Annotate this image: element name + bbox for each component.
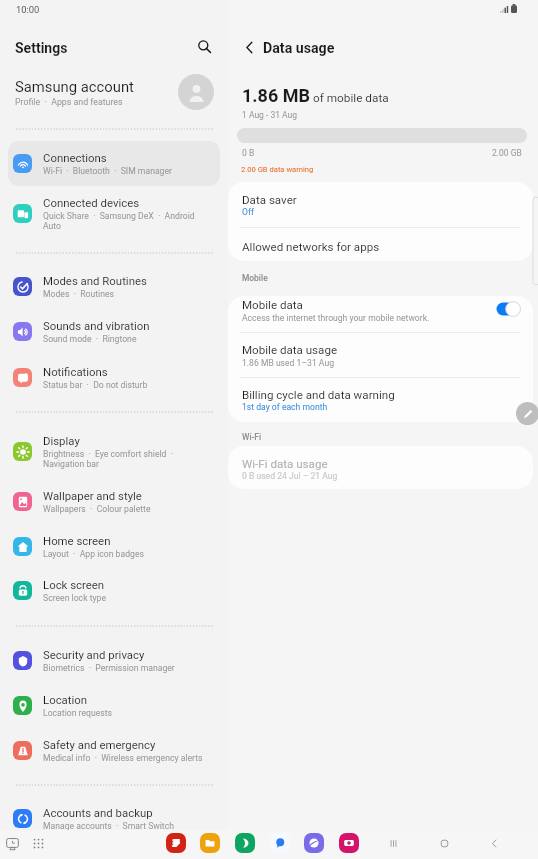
button[interactable]: Edit — [516, 402, 538, 425]
button[interactable]: Phone — [235, 833, 255, 853]
staticText: 2.00 GB — [492, 148, 522, 158]
staticText: Brightness · Eye comfort shield · — [43, 449, 174, 459]
button[interactable]: Security and privacy — [8, 638, 220, 683]
staticText: Access the internet through your mobile … — [242, 313, 430, 323]
button[interactable]: Internet — [304, 833, 324, 853]
button[interactable]: Back — [236, 34, 262, 60]
staticText: Settings — [15, 40, 68, 56]
button[interactable]: Camera — [339, 833, 359, 853]
staticText: Screen lock type — [43, 593, 107, 603]
staticText: Status bar · Do not disturb — [43, 380, 148, 390]
button[interactable]: Taskbar — [1, 832, 23, 854]
staticText: Quick Share · Samsung DeX · Android — [43, 211, 195, 221]
button[interactable]: Search — [191, 33, 218, 60]
staticText: 2.00 GB data warning — [241, 165, 314, 174]
button[interactable]: Safety and emergency — [8, 728, 220, 773]
button[interactable]: Home — [433, 832, 455, 854]
button[interactable]: All apps — [27, 832, 49, 854]
button[interactable]: Back — [483, 832, 505, 854]
staticText: of mobile data — [313, 91, 389, 105]
staticText: Profile · Apps and features — [15, 97, 123, 107]
staticText: Mobile — [242, 273, 268, 283]
button[interactable]: Wallpaper and style — [8, 479, 220, 524]
staticText: Sound mode · Ringtone — [43, 334, 137, 344]
staticText: Layout · App icon badges — [43, 549, 144, 559]
staticText: Connected devices — [43, 196, 140, 209]
button[interactable]: Connections — [8, 141, 220, 186]
button[interactable]: Notifications — [8, 355, 220, 400]
staticText: 1 Aug - 31 Aug — [242, 110, 298, 120]
staticText: 0 B — [242, 148, 255, 158]
staticText: Wallpapers · Colour palette — [43, 504, 151, 514]
button[interactable]: Lock screen — [8, 568, 220, 613]
staticText: Sounds and vibration — [43, 319, 150, 332]
staticText: Billing cycle and data warning — [242, 388, 395, 402]
staticText: Display — [43, 434, 80, 447]
staticText: Wi-Fi data usage — [242, 457, 328, 471]
staticText: Manage accounts · Smart Switch — [43, 821, 174, 831]
staticText: Samsung account — [15, 78, 134, 95]
staticText: Location requests — [43, 708, 113, 718]
staticText: Modes and Routines — [43, 274, 147, 287]
staticText: Data usage — [263, 40, 335, 57]
staticText: 10:00 — [16, 4, 40, 15]
staticText: Medical info · Wireless emergency alerts — [43, 753, 203, 763]
staticText: Home screen — [43, 534, 111, 547]
staticText: Mobile data — [242, 298, 303, 312]
button[interactable]: Home screen — [8, 524, 220, 569]
staticText: Notifications — [43, 365, 108, 378]
staticText: Data saver — [242, 193, 297, 207]
staticText: Accounts and backup — [43, 806, 153, 819]
staticText: Modes · Routines — [43, 289, 114, 299]
button[interactable]: Samsung account — [0, 74, 228, 110]
staticText: Auto — [43, 221, 62, 231]
staticText: Navigation bar — [43, 459, 99, 469]
button[interactable]: My Files — [200, 833, 220, 853]
button[interactable]: Gallery — [166, 833, 186, 853]
button[interactable]: Modes and Routines — [8, 264, 220, 309]
staticText: Security and privacy — [43, 648, 145, 661]
staticText: Lock screen — [43, 578, 105, 591]
staticText: Biometrics · Permission manager — [43, 663, 175, 673]
button[interactable]: Connected devices — [8, 187, 220, 239]
staticText: 1st day of each month — [242, 402, 328, 412]
staticText: 1.86 MB used 1–31 Aug — [242, 358, 334, 368]
button[interactable]: Accounts and backup — [8, 796, 220, 841]
staticText: Location — [43, 693, 88, 706]
button[interactable]: Mobile data toggle — [495, 301, 521, 317]
staticText: Wallpaper and style — [43, 489, 142, 502]
staticText: 0 B used 24 Jul – 21 Aug — [242, 471, 338, 481]
button[interactable]: Messages — [270, 833, 290, 853]
staticText: Mobile data usage — [242, 343, 338, 357]
staticText: Safety and emergency — [43, 738, 156, 751]
button[interactable]: Sounds and vibration — [8, 309, 220, 354]
staticText: Wi-Fi — [242, 432, 262, 442]
button[interactable]: Display — [8, 425, 220, 477]
staticText: Wi-Fi · Bluetooth · SIM manager — [43, 166, 172, 176]
staticText: 1.86 MB — [242, 85, 310, 106]
button[interactable]: Recent apps — [382, 832, 404, 854]
button[interactable]: Location — [8, 683, 220, 728]
staticText: Connections — [43, 151, 107, 164]
staticText: Off — [242, 207, 254, 217]
staticText: Allowed networks for apps — [242, 240, 380, 254]
